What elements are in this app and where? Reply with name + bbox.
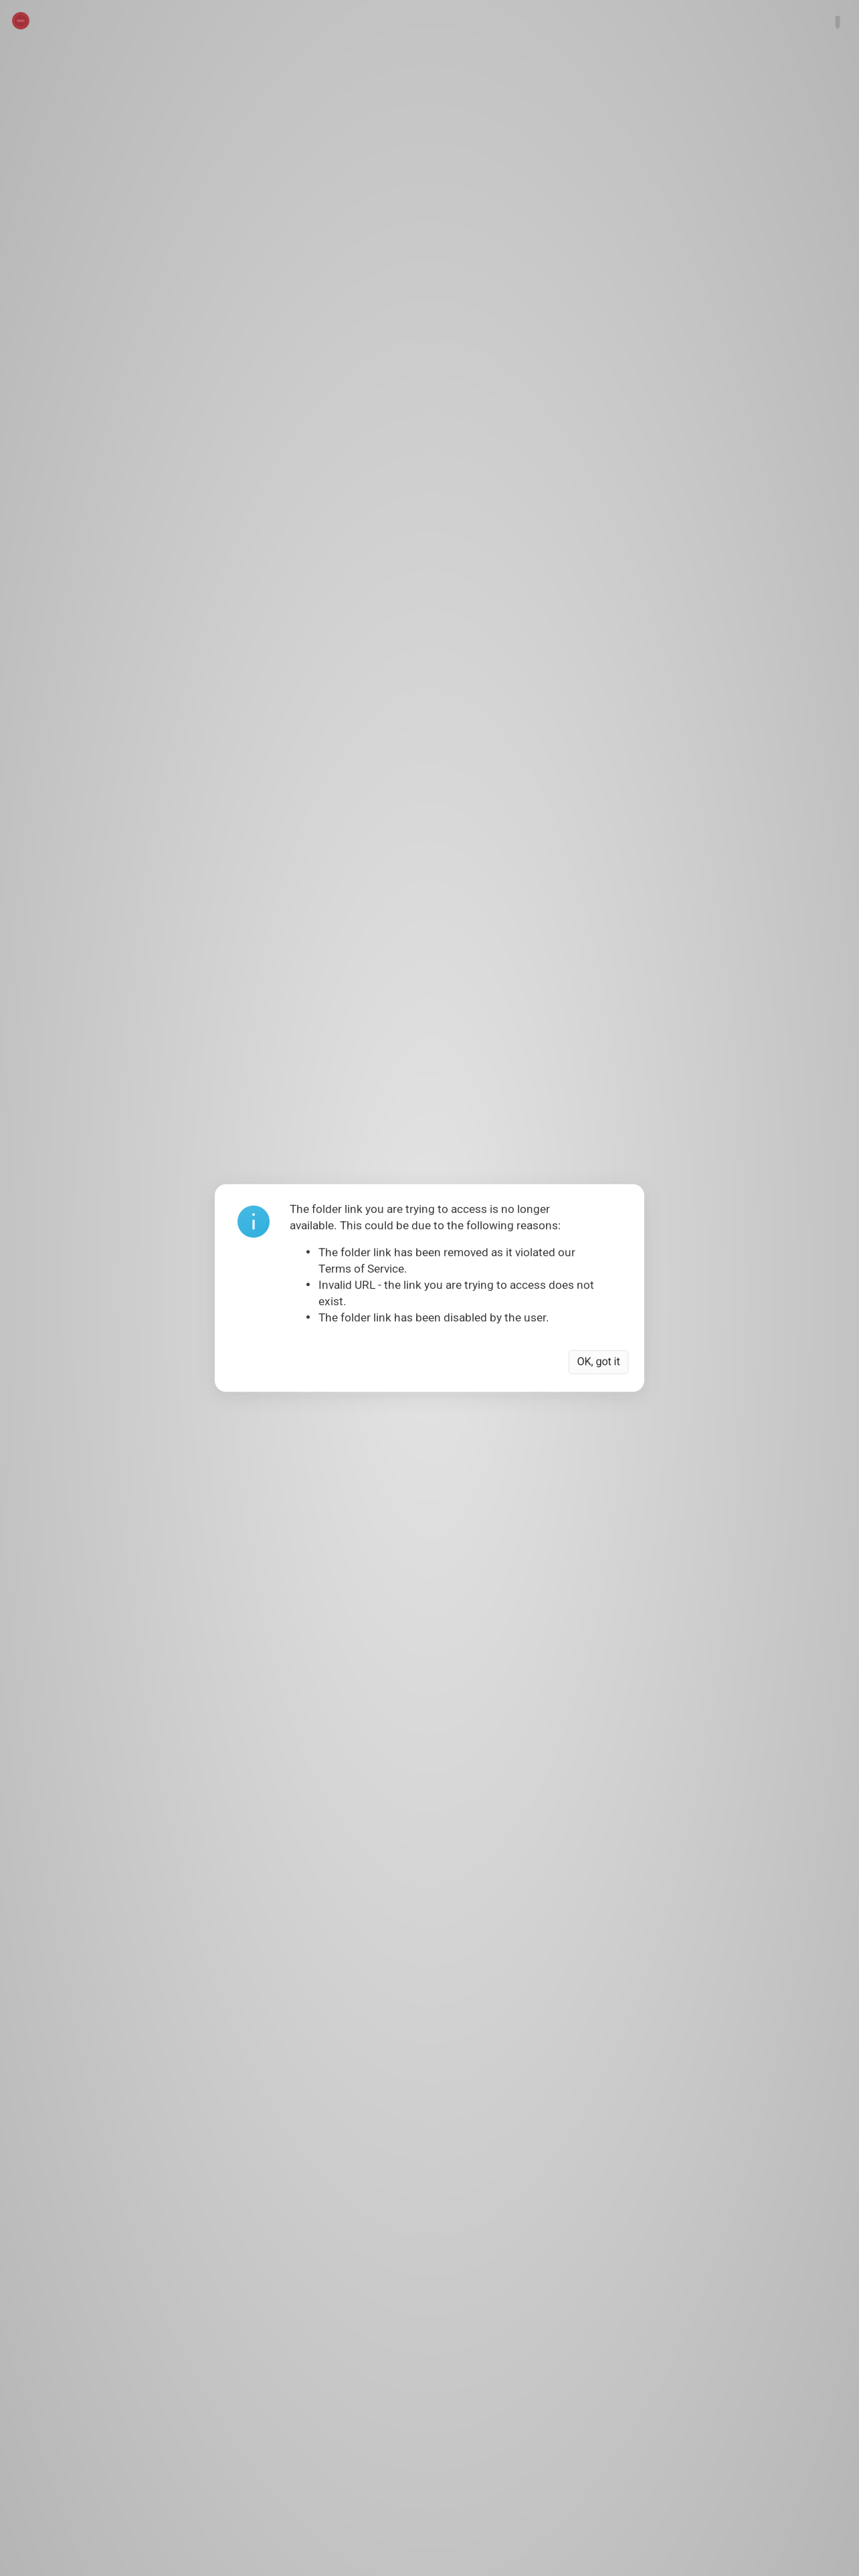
staticText: The folder link has been disabled by the…: [318, 1309, 549, 1326]
staticText: Invalid URL - the link you are trying to…: [318, 1277, 594, 1309]
button[interactable]: Home: [12, 12, 29, 29]
staticText: The folder link you are trying to access…: [290, 1201, 561, 1233]
staticText: OK, got it: [577, 1355, 620, 1368]
staticText: The folder link has been removed as it v…: [318, 1244, 575, 1277]
button[interactable]: Location: [833, 12, 842, 29]
button[interactable]: OK, got it: [569, 1350, 628, 1374]
